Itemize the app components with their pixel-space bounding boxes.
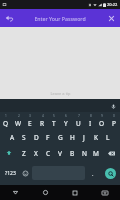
button[interactable]: Backspace bbox=[102, 145, 120, 161]
staticText: W bbox=[15, 119, 22, 128]
button[interactable]: M bbox=[90, 145, 102, 161]
staticText: A bbox=[10, 133, 15, 142]
staticText: S bbox=[22, 133, 26, 142]
button[interactable]: Emoji bbox=[20, 161, 31, 185]
button[interactable]: A bbox=[6, 129, 18, 145]
staticText: 20:22 bbox=[107, 2, 118, 7]
button[interactable]: 5 bbox=[48, 112, 60, 129]
button[interactable]: L bbox=[102, 129, 114, 145]
button[interactable]: Home bbox=[30, 185, 60, 200]
staticText: X bbox=[34, 149, 38, 158]
button[interactable]: 6 bbox=[60, 112, 72, 129]
staticText: Q bbox=[3, 119, 9, 128]
button[interactable]: J bbox=[78, 129, 90, 145]
button[interactable]: ?123 bbox=[0, 161, 20, 185]
button[interactable]: S bbox=[18, 129, 30, 145]
staticText: 5 bbox=[53, 114, 55, 118]
button[interactable]: 9 bbox=[96, 112, 108, 129]
button[interactable]: F bbox=[42, 129, 54, 145]
button[interactable]: N bbox=[78, 145, 90, 161]
staticText: N bbox=[82, 149, 87, 158]
button[interactable]: Recents bbox=[60, 185, 90, 200]
button[interactable]: Back bbox=[0, 9, 18, 27]
staticText: Z bbox=[22, 149, 26, 158]
button[interactable]: X bbox=[30, 145, 42, 161]
button[interactable]: Switch keyboard bbox=[90, 185, 120, 200]
staticText: ?123 bbox=[5, 170, 16, 177]
button[interactable]: 3 bbox=[24, 112, 36, 129]
staticText: R bbox=[40, 119, 45, 128]
staticText: 3 bbox=[29, 114, 31, 118]
button[interactable]: . bbox=[86, 161, 100, 185]
staticText: K bbox=[94, 133, 99, 142]
button[interactable]: Close bbox=[102, 9, 120, 27]
staticText: 6 bbox=[65, 114, 67, 118]
button[interactable]: V bbox=[54, 145, 66, 161]
staticText: 7 bbox=[78, 114, 80, 118]
button[interactable]: H bbox=[66, 129, 78, 145]
staticText: 9 bbox=[101, 114, 103, 118]
button[interactable]: D bbox=[30, 129, 42, 145]
staticText: M bbox=[93, 149, 99, 158]
staticText: . bbox=[92, 170, 94, 177]
staticText: P bbox=[112, 119, 116, 128]
staticText: C bbox=[46, 149, 51, 158]
staticText: H bbox=[70, 133, 75, 142]
button[interactable]: Search bbox=[105, 168, 116, 179]
staticText: O bbox=[99, 119, 105, 128]
staticText: D bbox=[34, 133, 39, 142]
staticText: E bbox=[28, 119, 32, 128]
button[interactable]: G bbox=[54, 129, 66, 145]
staticText: G bbox=[58, 133, 63, 142]
staticText: B bbox=[70, 149, 75, 158]
button[interactable]: 7 bbox=[72, 112, 84, 129]
staticText: 8 bbox=[90, 114, 92, 118]
staticText: 2 bbox=[18, 114, 20, 118]
button[interactable]: Back bbox=[0, 185, 30, 200]
staticText: T bbox=[52, 119, 56, 128]
staticText: Enter Your Password bbox=[34, 15, 86, 22]
button[interactable]: 0 bbox=[108, 112, 120, 129]
button[interactable]: K bbox=[90, 129, 102, 145]
staticText: J bbox=[83, 133, 85, 142]
staticText: F bbox=[46, 133, 50, 142]
button[interactable]: B bbox=[66, 145, 78, 161]
button[interactable]: 4 bbox=[36, 112, 48, 129]
staticText: Y bbox=[64, 119, 68, 128]
button[interactable]: Voice input bbox=[109, 102, 117, 110]
staticText: U bbox=[76, 119, 81, 128]
staticText: 1 bbox=[5, 114, 7, 118]
staticText: 4 bbox=[42, 114, 44, 118]
staticText: I bbox=[89, 119, 92, 128]
button[interactable]: 2 bbox=[12, 112, 24, 129]
staticText: Leave a tip bbox=[50, 91, 71, 96]
button[interactable]: 8 bbox=[84, 112, 96, 129]
staticText: V bbox=[58, 149, 62, 158]
button[interactable]: C bbox=[42, 145, 54, 161]
staticText: 0 bbox=[113, 114, 115, 118]
staticText: L bbox=[106, 133, 110, 142]
button[interactable]: Shift bbox=[0, 145, 18, 161]
button[interactable]: 1 bbox=[0, 112, 12, 129]
button[interactable]: Z bbox=[18, 145, 30, 161]
